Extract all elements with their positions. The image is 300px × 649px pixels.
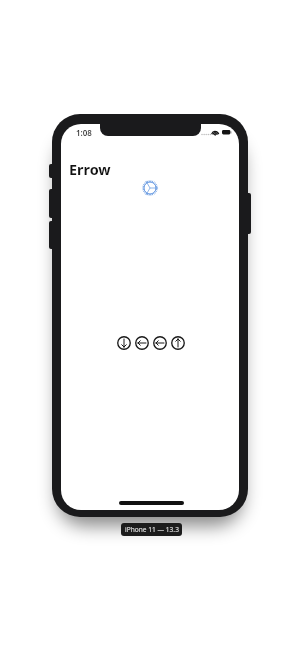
- button[interactable]: Back: [153, 336, 167, 350]
- button[interactable]: Down: [117, 336, 131, 350]
- button[interactable]: Up: [171, 336, 185, 350]
- button[interactable]: Back: [135, 336, 149, 350]
- staticText: iPhone 11 — 13.3: [125, 525, 179, 534]
- staticText: Errow: [69, 160, 111, 180]
- button[interactable]: Settings: [142, 180, 158, 196]
- staticText: 1:08: [76, 127, 92, 138]
